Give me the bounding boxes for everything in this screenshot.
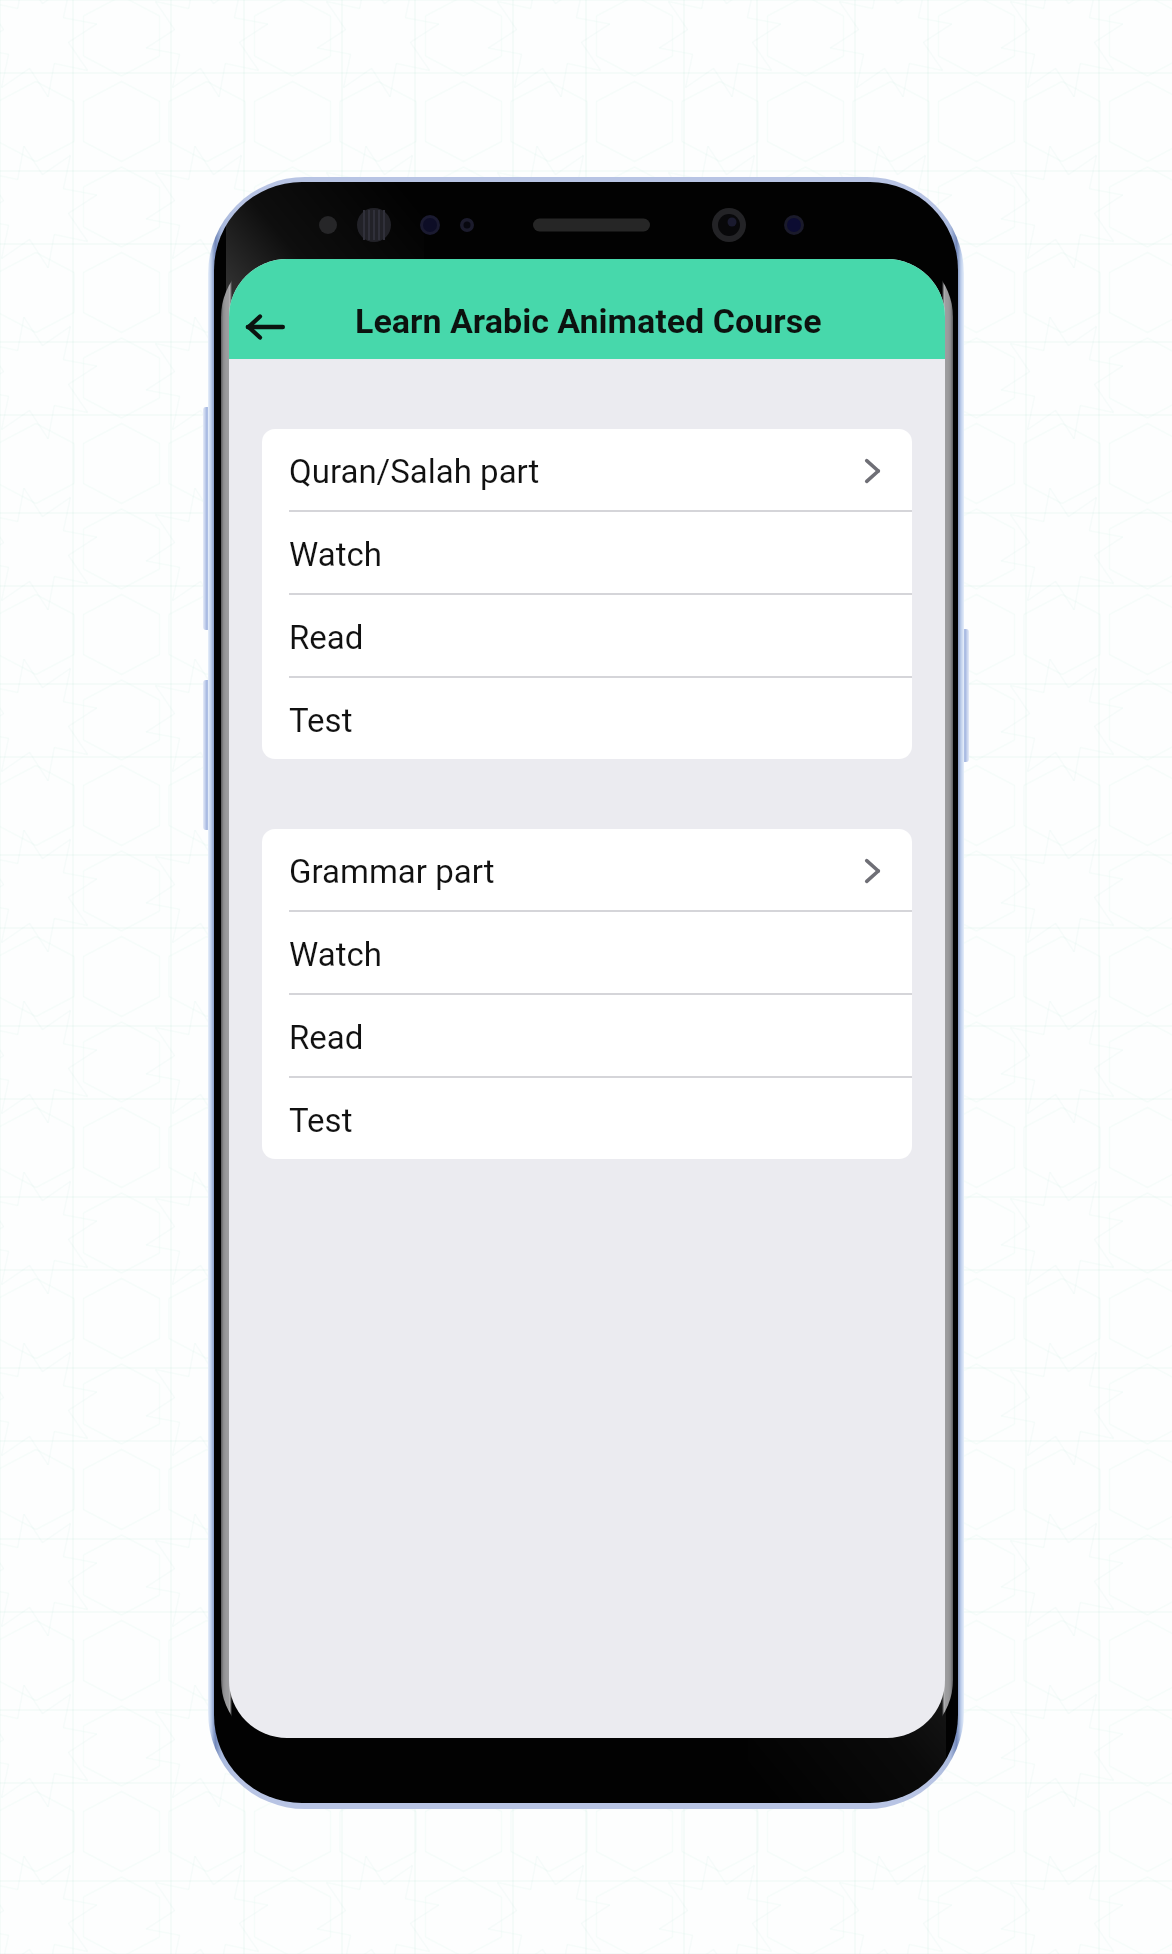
staticText: Read	[289, 1018, 364, 1057]
button[interactable]: Test	[262, 678, 912, 759]
staticText: Learn Arabic Animated Course	[355, 301, 822, 341]
staticText: Read	[289, 618, 364, 657]
staticText: Test	[289, 701, 353, 740]
staticText: Watch	[289, 535, 382, 574]
button[interactable]: Watch	[262, 512, 912, 593]
button[interactable]: Read	[262, 995, 912, 1076]
button[interactable]: Watch	[262, 912, 912, 993]
staticText: Watch	[289, 935, 382, 974]
staticText: Test	[289, 1101, 353, 1140]
button[interactable]: Test	[262, 1078, 912, 1159]
button[interactable]: Quran/Salah part	[262, 429, 912, 510]
button[interactable]: Grammar part	[262, 829, 912, 910]
staticText: Quran/Salah part	[289, 452, 540, 491]
button[interactable]: Back	[229, 291, 301, 363]
staticText: Grammar part	[289, 852, 495, 891]
button[interactable]: Read	[262, 595, 912, 676]
